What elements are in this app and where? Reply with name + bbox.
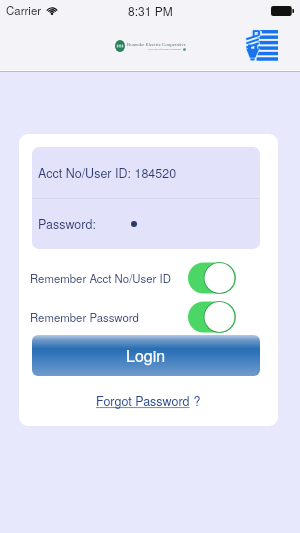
staticText: The Power of Human Connections bbox=[148, 48, 182, 51]
staticText: Carrier bbox=[6, 2, 42, 18]
staticText: Forgot Password bbox=[96, 392, 190, 410]
button[interactable]: Bill bbox=[246, 30, 278, 62]
staticText: ? bbox=[190, 392, 201, 410]
staticText: Remember Password bbox=[30, 309, 139, 325]
button[interactable]: Login bbox=[32, 335, 260, 376]
staticText: Password: bbox=[38, 215, 96, 233]
staticText: Acct No/User ID: 184520 bbox=[38, 164, 177, 182]
staticText: Login bbox=[126, 344, 166, 367]
button[interactable]: Acct No/User ID: 184520 bbox=[32, 147, 260, 198]
button[interactable]: Password: bbox=[32, 199, 260, 249]
staticText: 8:31 PM bbox=[128, 2, 173, 19]
button[interactable]: Forgot Password bbox=[19, 389, 278, 413]
staticText: Roanoke Electric Cooperative bbox=[127, 42, 186, 47]
staticText: Remember Acct No/User ID bbox=[30, 270, 171, 286]
button[interactable]: Remember Password bbox=[19, 301, 278, 333]
button[interactable]: Remember Acct No/User ID bbox=[19, 262, 278, 294]
